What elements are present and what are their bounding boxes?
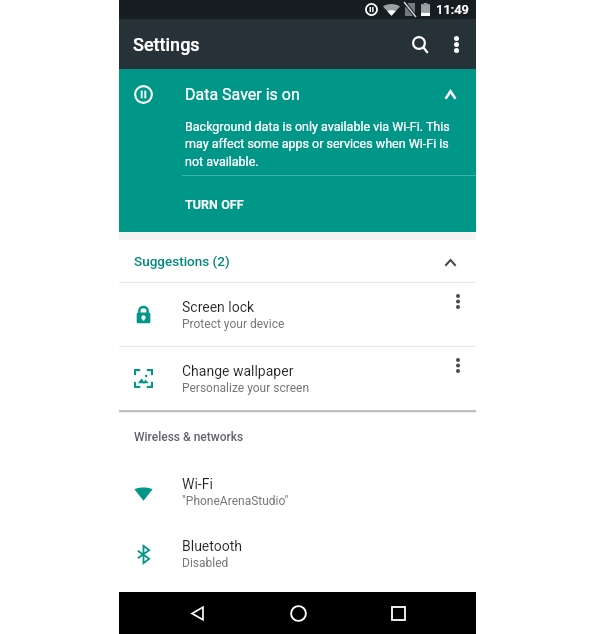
button[interactable]: Bluetooth — [119, 523, 476, 585]
staticText: Wi-Fi — [182, 476, 213, 492]
staticText: Background data is only available via Wi… — [185, 119, 463, 169]
staticText: Settings — [133, 34, 200, 55]
button[interactable]: Data Saver is on — [119, 69, 476, 119]
button[interactable]: Screen lock — [119, 283, 476, 346]
button[interactable]: Back — [175, 592, 219, 634]
staticText: 11:49 — [436, 2, 469, 17]
button[interactable]: More options — [439, 283, 476, 346]
button[interactable]: More options — [437, 22, 475, 66]
staticText: Bluetooth — [182, 538, 242, 554]
staticText: Wireless & networks — [134, 430, 244, 444]
staticText: Protect your device — [182, 317, 285, 331]
button[interactable]: Search — [393, 22, 437, 66]
button[interactable]: Wi-Fi — [119, 461, 476, 523]
button[interactable]: TURN OFF — [119, 176, 476, 232]
button[interactable]: Home — [276, 592, 320, 634]
staticText: Disabled — [182, 556, 229, 570]
staticText: Data Saver is on — [185, 85, 300, 104]
staticText: "PhoneArenaStudio" — [182, 494, 289, 508]
staticText: Suggestions (2) — [134, 253, 230, 269]
staticText: TURN OFF — [185, 197, 244, 212]
staticText: Change wallpaper — [182, 363, 294, 379]
button[interactable]: Recent apps — [376, 592, 420, 634]
staticText: Personalize your screen — [182, 381, 310, 395]
staticText: Screen lock — [182, 299, 255, 315]
button[interactable]: Suggestions (2) — [119, 240, 476, 282]
button[interactable]: More options — [439, 347, 476, 410]
button[interactable]: Change wallpaper — [119, 347, 476, 410]
